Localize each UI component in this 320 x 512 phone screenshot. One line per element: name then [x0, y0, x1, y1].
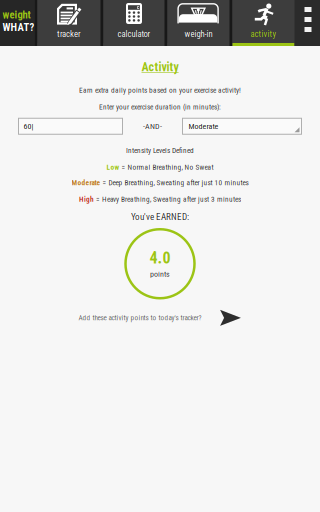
button[interactable]: Add these activity points to today's tra…: [78, 309, 241, 326]
button[interactable]: More options: [294, 0, 320, 46]
staticText: calculator: [117, 29, 150, 39]
staticText: = Deep Breathing, Sweating after just 10…: [100, 178, 248, 187]
staticText: weight: [2, 8, 30, 21]
staticText: = Heavy Breathing, Sweating after just 3…: [94, 195, 241, 204]
staticText: 4.0: [149, 249, 170, 267]
staticText: Earn extra daily points based on your ex…: [79, 86, 241, 95]
staticText: 60|: [23, 122, 33, 131]
staticText: Add these activity points to today's tra…: [78, 313, 201, 322]
button[interactable]: tracker: [37, 0, 100, 46]
button[interactable]: weigh-in: [167, 0, 229, 46]
staticText: Moderate: [71, 178, 100, 187]
staticText: Low: [106, 163, 119, 171]
button[interactable]: 60|: [18, 118, 122, 134]
staticText: Activity: [141, 60, 178, 74]
staticText: You've EARNED:: [131, 212, 189, 222]
staticText: activity: [250, 29, 276, 39]
button[interactable]: activity: [232, 0, 294, 46]
staticText: High: [79, 195, 94, 204]
staticText: points: [150, 269, 170, 279]
staticText: Enter your exercise duration (in minutes…: [99, 103, 221, 111]
staticText: weigh-in: [184, 29, 212, 39]
button[interactable]: calculator: [103, 0, 164, 46]
staticText: WHAT?: [2, 21, 34, 33]
staticText: = Normal Breathing, No Sweat: [119, 163, 213, 171]
button[interactable]: weight: [0, 0, 34, 46]
staticText: -AND-: [143, 122, 162, 131]
staticText: Intensity Levels Defined: [126, 146, 194, 155]
button[interactable]: Moderate: [182, 118, 301, 134]
staticText: Moderate: [188, 122, 218, 131]
staticText: tracker: [57, 29, 81, 39]
